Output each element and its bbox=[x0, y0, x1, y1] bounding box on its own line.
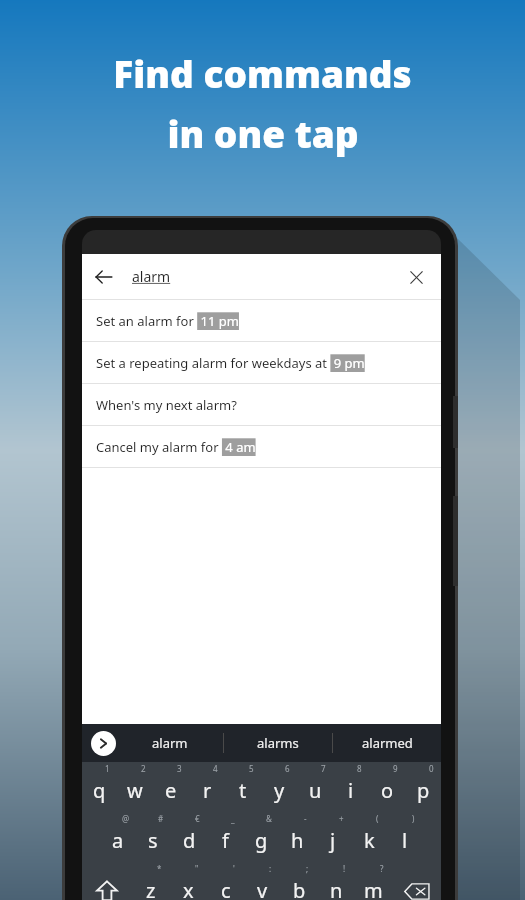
button[interactable]: 1 bbox=[82, 762, 117, 812]
staticText: & bbox=[266, 813, 272, 824]
button[interactable]: 0 bbox=[405, 762, 441, 812]
staticText: ? bbox=[380, 863, 384, 874]
staticText: q bbox=[93, 777, 106, 804]
staticText: 5 bbox=[249, 763, 254, 774]
button[interactable]: 5 bbox=[225, 762, 261, 812]
staticText: " bbox=[195, 863, 199, 874]
button[interactable]: Backspace bbox=[392, 862, 441, 900]
staticText: o bbox=[381, 777, 394, 804]
button[interactable]: ' bbox=[207, 862, 244, 900]
staticText: j bbox=[330, 827, 336, 854]
staticText: alarm bbox=[152, 734, 188, 752]
staticText: e bbox=[165, 777, 177, 804]
button[interactable]: 9 bbox=[369, 762, 405, 812]
staticText: # bbox=[158, 813, 164, 824]
button[interactable]: ? bbox=[355, 862, 392, 900]
staticText: alarmed bbox=[362, 734, 413, 752]
staticText: alarms bbox=[257, 734, 299, 752]
staticText: k bbox=[364, 827, 375, 854]
button[interactable]: Back bbox=[82, 254, 441, 299]
button[interactable]: alarms bbox=[224, 724, 332, 762]
staticText: ( bbox=[376, 813, 379, 824]
staticText: x bbox=[183, 877, 194, 900]
staticText: ! bbox=[343, 863, 346, 874]
staticText: g bbox=[255, 827, 268, 854]
staticText: s bbox=[148, 827, 158, 854]
staticText: z bbox=[146, 877, 156, 900]
staticText: m bbox=[364, 877, 383, 900]
button[interactable]: When's my next alarm? bbox=[82, 384, 441, 426]
button[interactable]: Set an alarm for 11 pm bbox=[82, 300, 441, 342]
staticText: Cancel my alarm for 4 am bbox=[96, 438, 259, 456]
staticText: ; bbox=[306, 863, 309, 874]
staticText: ) bbox=[412, 813, 415, 824]
button[interactable]: & bbox=[243, 812, 279, 862]
staticText: w bbox=[127, 777, 143, 804]
staticText: 3 bbox=[177, 763, 182, 774]
staticText: n bbox=[330, 877, 343, 900]
button[interactable]: _ bbox=[207, 812, 243, 862]
staticText: - bbox=[304, 813, 307, 824]
button[interactable]: 2 bbox=[117, 762, 153, 812]
staticText: a bbox=[112, 827, 124, 854]
button[interactable]: Clear bbox=[405, 266, 427, 288]
button[interactable]: ! bbox=[318, 862, 355, 900]
button[interactable]: @ bbox=[100, 812, 135, 862]
staticText: * bbox=[157, 863, 162, 874]
button[interactable]: 7 bbox=[297, 762, 333, 812]
staticText: u bbox=[309, 777, 322, 804]
staticText: 2 bbox=[141, 763, 146, 774]
staticText: in one tap bbox=[167, 108, 359, 158]
staticText: i bbox=[348, 777, 354, 804]
staticText: When's my next alarm? bbox=[96, 396, 237, 414]
staticText: y bbox=[274, 777, 285, 804]
button[interactable]: + bbox=[315, 812, 351, 862]
button[interactable]: ) bbox=[387, 812, 423, 862]
staticText: 4 bbox=[213, 763, 218, 774]
staticText: d bbox=[183, 827, 196, 854]
staticText: ' bbox=[233, 863, 235, 874]
staticText: 0 bbox=[429, 763, 434, 774]
staticText: 6 bbox=[285, 763, 290, 774]
button[interactable]: : bbox=[244, 862, 281, 900]
button[interactable]: Set a repeating alarm for weekdays at 9 … bbox=[82, 342, 441, 384]
staticText: c bbox=[221, 877, 231, 900]
button[interactable]: More suggestions bbox=[91, 731, 116, 756]
staticText: f bbox=[222, 827, 229, 854]
button[interactable]: alarmed bbox=[333, 724, 441, 762]
button[interactable]: 4 bbox=[189, 762, 225, 812]
button[interactable]: Shift bbox=[82, 862, 132, 900]
staticText: p bbox=[417, 777, 430, 804]
button[interactable]: € bbox=[171, 812, 207, 862]
staticText: + bbox=[339, 813, 344, 824]
button[interactable]: 3 bbox=[153, 762, 189, 812]
button[interactable]: 8 bbox=[333, 762, 369, 812]
staticText: 9 bbox=[393, 763, 398, 774]
staticText: : bbox=[269, 863, 272, 874]
button[interactable]: ( bbox=[351, 812, 387, 862]
staticText: € bbox=[195, 813, 200, 824]
button[interactable]: - bbox=[279, 812, 315, 862]
staticText: 7 bbox=[321, 763, 326, 774]
button[interactable]: # bbox=[135, 812, 171, 862]
staticText: @ bbox=[122, 813, 130, 824]
button[interactable]: Back bbox=[94, 267, 114, 287]
button[interactable]: ; bbox=[281, 862, 318, 900]
button[interactable]: Cancel my alarm for 4 am bbox=[82, 426, 441, 468]
button[interactable]: * bbox=[132, 862, 170, 900]
staticText: _ bbox=[231, 813, 235, 824]
staticText: b bbox=[293, 877, 306, 900]
button[interactable]: 6 bbox=[261, 762, 297, 812]
staticText: t bbox=[239, 777, 247, 804]
staticText: r bbox=[203, 777, 212, 804]
staticText: l bbox=[402, 827, 408, 854]
staticText: v bbox=[257, 877, 268, 900]
button[interactable]: " bbox=[170, 862, 207, 900]
staticText: 1 bbox=[105, 763, 110, 774]
staticText: Find commands bbox=[113, 48, 412, 98]
staticText: Set a repeating alarm for weekdays at 9 … bbox=[96, 354, 369, 372]
button[interactable]: alarm bbox=[116, 724, 223, 762]
staticText: alarm bbox=[132, 267, 171, 286]
staticText: h bbox=[291, 827, 304, 854]
staticText: 8 bbox=[357, 763, 362, 774]
